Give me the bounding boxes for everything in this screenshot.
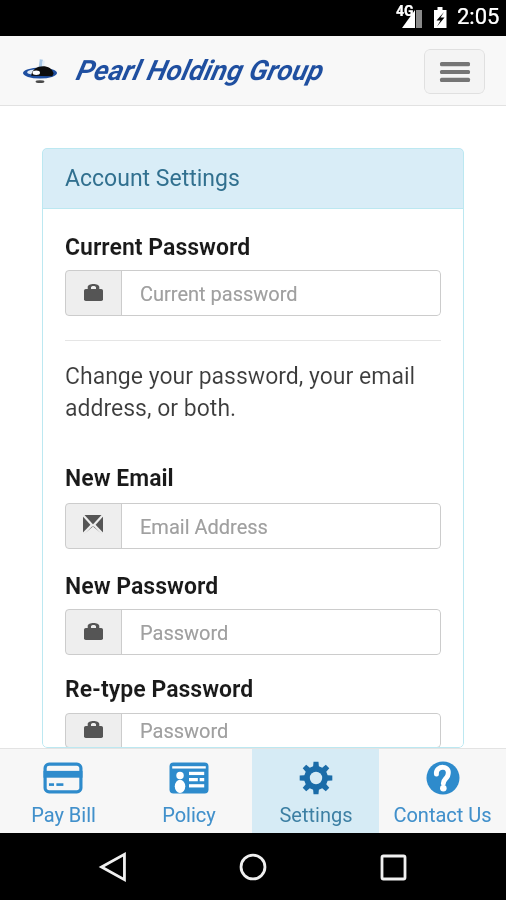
staticText: Settings: [279, 803, 353, 826]
staticText: Policy: [162, 803, 216, 826]
staticText: Pay Bill: [31, 803, 96, 826]
button[interactable]: Password: [65, 609, 441, 655]
staticText: Account Settings: [65, 165, 240, 192]
button[interactable]: Contact Us: [379, 748, 506, 833]
staticText: Current Password: [65, 234, 251, 261]
staticText: New Password: [65, 573, 219, 600]
staticText: Change your password, your email address…: [65, 363, 416, 421]
button[interactable]: Settings: [252, 748, 379, 833]
staticText: 2:05: [457, 4, 500, 30]
button[interactable]: Password: [65, 713, 441, 748]
button[interactable]: Current password: [65, 270, 441, 316]
button[interactable]: Email Address: [65, 503, 441, 549]
staticText: Contact Us: [393, 803, 492, 826]
button[interactable]: Policy: [126, 748, 252, 833]
staticText: Password: [140, 719, 229, 742]
button[interactable]: Menu: [424, 49, 485, 94]
button[interactable]: Recents: [366, 840, 420, 894]
staticText: New Email: [65, 465, 174, 492]
button[interactable]: Home: [226, 840, 280, 894]
staticText: Email Address: [140, 515, 268, 538]
staticText: Password: [140, 621, 229, 644]
staticText: Pearl Holding Group: [75, 54, 322, 87]
button[interactable]: Pay Bill: [0, 748, 126, 833]
staticText: Re-type Password: [65, 676, 254, 703]
button[interactable]: Back: [86, 840, 140, 894]
staticText: 4G: [396, 3, 414, 19]
staticText: Current password: [140, 282, 298, 305]
